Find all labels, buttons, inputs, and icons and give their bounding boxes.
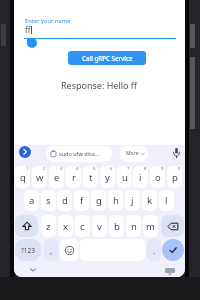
staticText: s (46, 194, 51, 207)
staticText: x (63, 220, 69, 233)
staticText: l (165, 194, 168, 207)
button[interactable]: z (41, 215, 56, 237)
staticText: Call gRPC Service (82, 54, 133, 62)
staticText: Response: Hello ff (61, 79, 138, 91)
staticText: Enter your name (25, 17, 71, 25)
staticText: p (172, 171, 178, 184)
button[interactable]: f (74, 190, 89, 211)
button[interactable] (29, 267, 37, 273)
staticText: w (36, 171, 44, 184)
button[interactable] (19, 146, 31, 158)
button[interactable]: w (32, 166, 47, 188)
button[interactable]: a (24, 190, 39, 211)
staticText: 2 (43, 166, 46, 171)
button[interactable]: p (167, 166, 182, 188)
button[interactable] (162, 239, 184, 261)
button[interactable]: l (159, 190, 174, 211)
button[interactable]: r (66, 166, 81, 188)
staticText: 5 (93, 166, 96, 171)
button[interactable]: s (41, 190, 56, 211)
button[interactable]: b (109, 215, 124, 237)
staticText: 4 (76, 166, 79, 171)
staticText: ff (25, 24, 31, 35)
staticText: e (54, 171, 60, 184)
staticText: More (126, 150, 139, 157)
staticText: i (139, 171, 142, 184)
button[interactable] (15, 215, 38, 237)
staticText: k (147, 194, 153, 207)
button[interactable]: sudo ufw disa... (46, 146, 112, 162)
staticText: u (122, 171, 128, 184)
staticText: j (131, 194, 134, 207)
button[interactable] (164, 267, 176, 277)
button[interactable] (60, 239, 78, 261)
button[interactable]: k (142, 190, 157, 211)
staticText: q (20, 171, 26, 184)
button[interactable]: m (143, 215, 158, 237)
button[interactable]: j (125, 190, 140, 211)
staticText: sudo ufw disa... (59, 150, 100, 157)
button[interactable]: More (120, 146, 148, 162)
button[interactable]: , (44, 239, 58, 261)
staticText: 1 (26, 166, 29, 171)
staticText: t (89, 171, 93, 184)
staticText: c (80, 220, 85, 233)
staticText: n (131, 220, 137, 233)
button[interactable]: Call gRPC Service (68, 51, 146, 65)
button[interactable] (161, 215, 184, 237)
staticText: f (80, 194, 84, 207)
staticText: h (113, 194, 119, 207)
staticText: 0 (178, 166, 181, 171)
staticText: . (153, 245, 156, 256)
button[interactable]: o (150, 166, 165, 188)
button[interactable] (172, 147, 181, 160)
button[interactable]: y (100, 166, 115, 188)
button[interactable]: ?123 (15, 239, 41, 261)
button[interactable]: c (75, 215, 90, 237)
staticText: ?123 (21, 246, 35, 255)
button[interactable]: t (83, 166, 98, 188)
button[interactable]: q (15, 166, 30, 188)
button[interactable]: d (57, 190, 72, 211)
button[interactable]: i (133, 166, 148, 188)
button[interactable]: . (147, 239, 161, 261)
staticText: o (155, 171, 161, 184)
button[interactable]: x (58, 215, 73, 237)
staticText: v (97, 220, 102, 233)
staticText: m (146, 220, 155, 233)
button[interactable]: u (117, 166, 132, 188)
staticText: 8 (144, 166, 147, 171)
staticText: g (96, 194, 102, 207)
button[interactable]: g (91, 190, 106, 211)
button[interactable]: h (108, 190, 123, 211)
staticText: b (114, 220, 120, 233)
staticText: 9 (161, 166, 164, 171)
button[interactable]: e (49, 166, 64, 188)
staticText: d (62, 194, 68, 207)
staticText: a (29, 194, 35, 207)
staticText: r (72, 171, 76, 184)
button[interactable]: n (126, 215, 141, 237)
staticText: 3 (60, 166, 63, 171)
staticText: , (50, 245, 53, 256)
staticText: y (105, 171, 110, 184)
staticText: 7 (127, 166, 130, 171)
staticText: 6 (110, 166, 113, 171)
staticText: z (46, 220, 51, 233)
button[interactable]: v (92, 215, 107, 237)
